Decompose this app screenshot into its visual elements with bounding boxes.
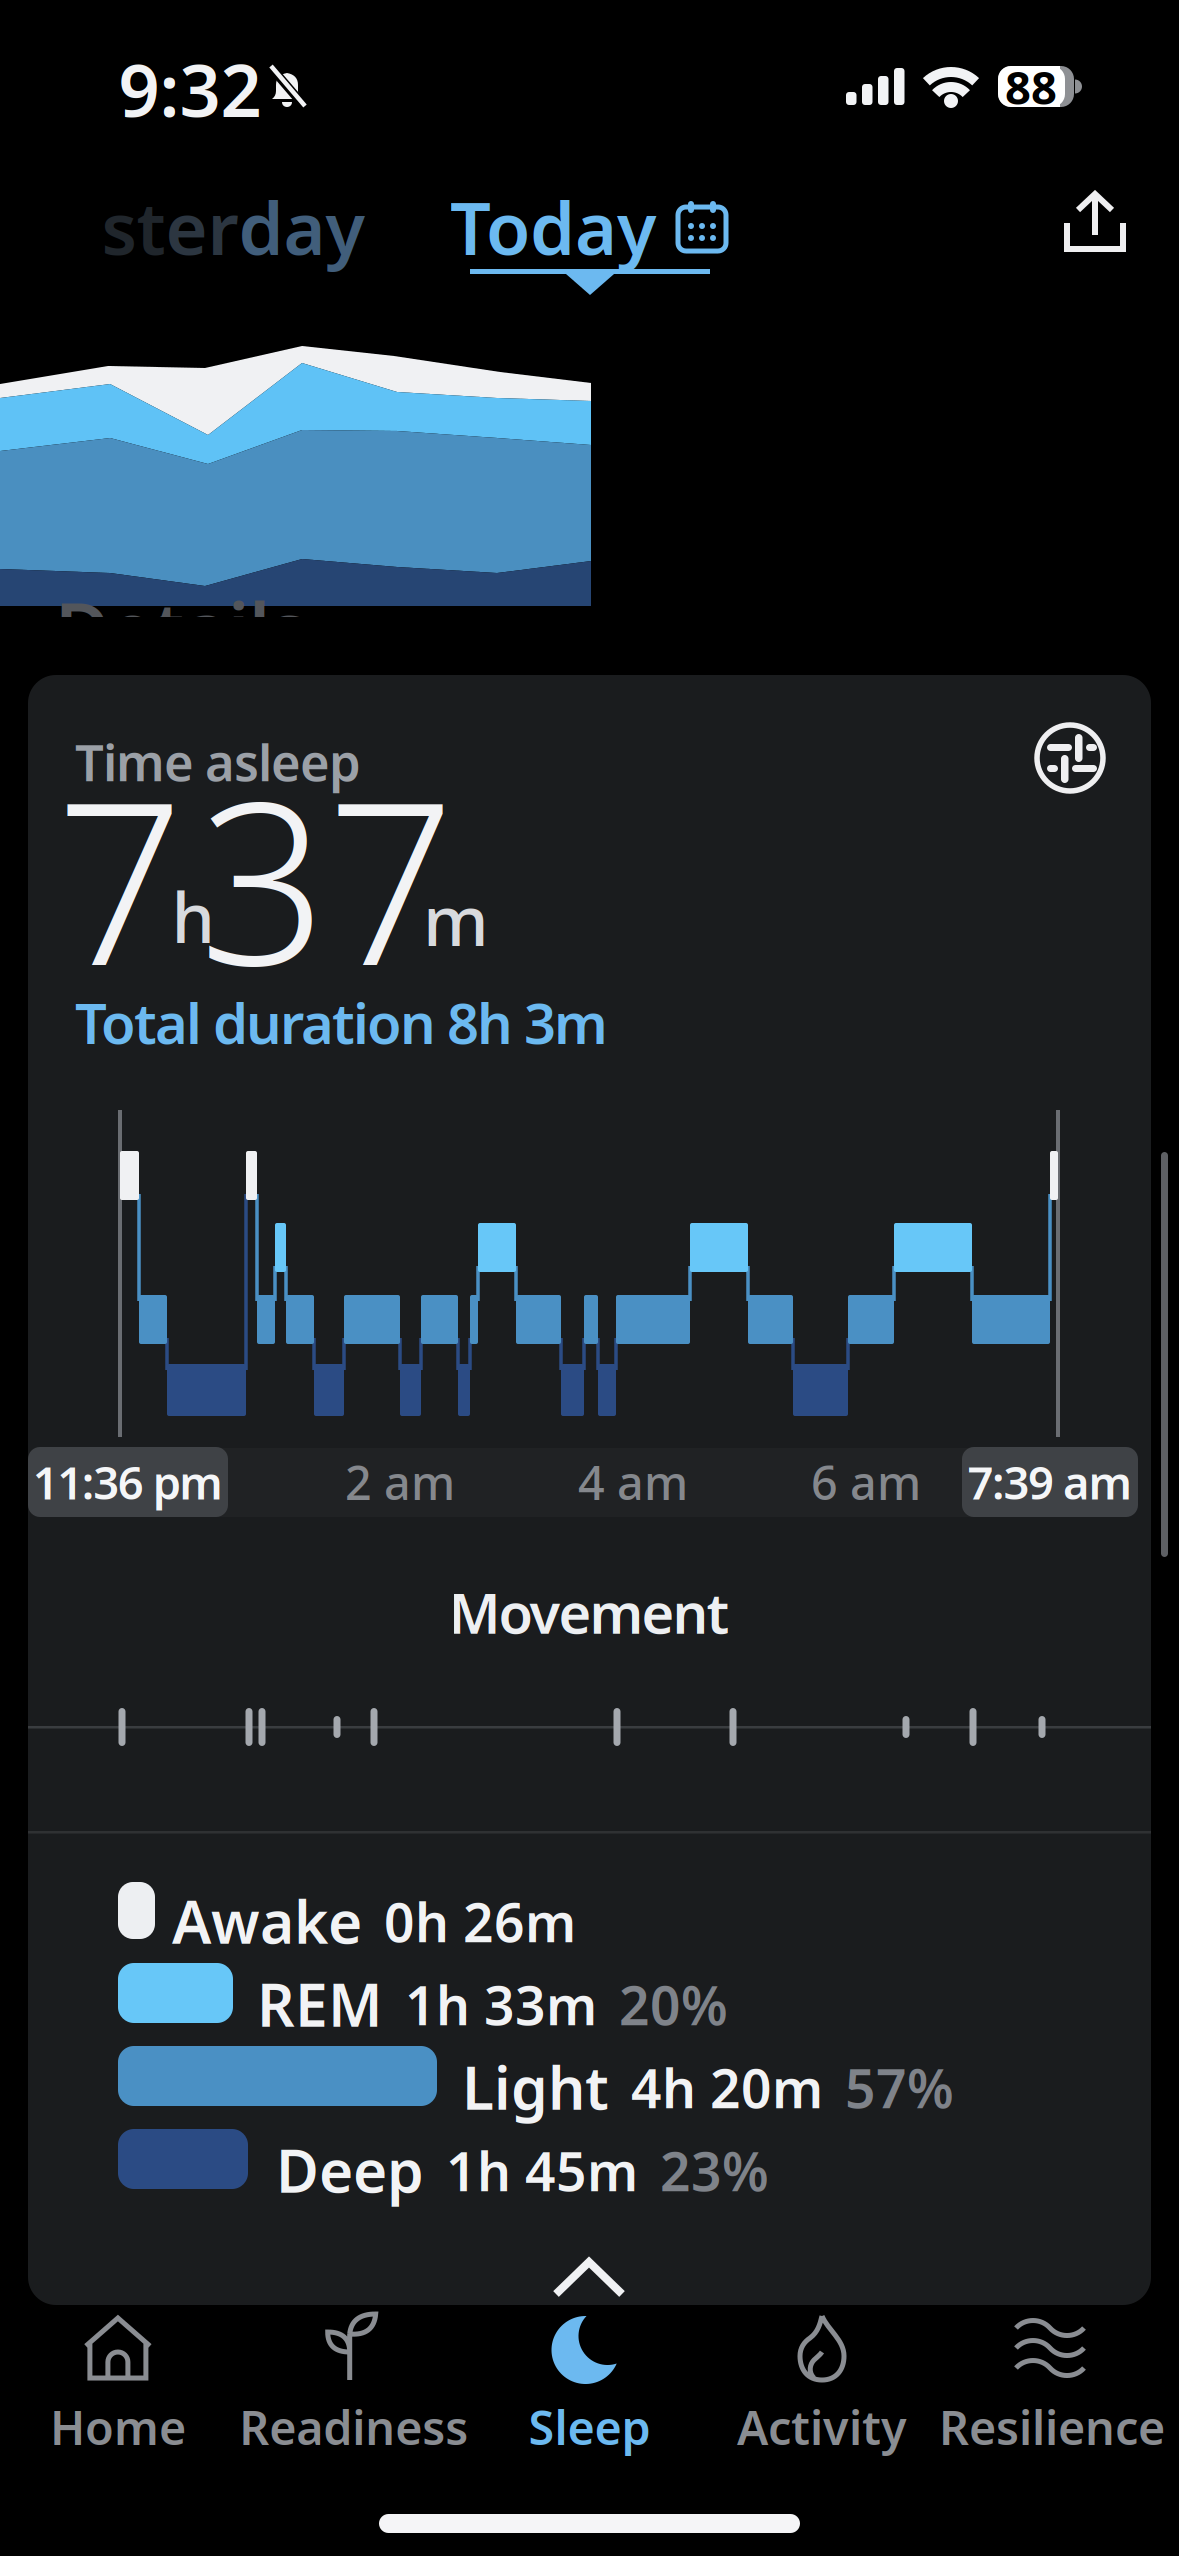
staticText: Resilience bbox=[939, 2396, 1165, 2458]
staticText: h bbox=[171, 870, 214, 962]
button[interactable]: Collapse details bbox=[552, 2258, 626, 2298]
staticText: 2 am bbox=[345, 1451, 455, 1513]
staticText: 23% bbox=[660, 2135, 769, 2206]
staticText: Deep bbox=[276, 2131, 424, 2209]
button[interactable]: Chart options bbox=[1034, 722, 1106, 794]
staticText: 4 am bbox=[578, 1451, 688, 1513]
staticText: REM bbox=[257, 1965, 383, 2043]
staticText: m bbox=[423, 873, 489, 965]
staticText: 88 bbox=[1005, 57, 1057, 117]
staticText: 6 am bbox=[811, 1451, 921, 1513]
staticText: Home bbox=[50, 2396, 186, 2458]
staticText: 7 bbox=[56, 729, 184, 1027]
staticText: day bbox=[238, 179, 364, 275]
staticText: 11:36 pm bbox=[33, 1452, 223, 1512]
staticText: Details bbox=[55, 578, 307, 677]
staticText: Time asleep bbox=[75, 728, 361, 795]
staticText: 37 bbox=[199, 729, 455, 1027]
staticText: er bbox=[165, 179, 238, 275]
staticText: Today bbox=[450, 179, 656, 275]
button[interactable]: Sleep bbox=[528, 2312, 650, 2458]
staticText: st bbox=[101, 179, 165, 275]
button[interactable]: Resilience bbox=[939, 2312, 1165, 2458]
staticText: 20% bbox=[619, 1969, 728, 2040]
button[interactable]: st bbox=[101, 179, 364, 275]
staticText: Awake bbox=[172, 1882, 362, 1960]
button[interactable]: Home bbox=[50, 2312, 186, 2458]
staticText: 9:32 bbox=[118, 41, 261, 137]
button[interactable]: Today bbox=[450, 179, 726, 275]
staticText: 1h 33m bbox=[405, 1969, 597, 2040]
staticText: 57% bbox=[845, 2052, 954, 2123]
staticText: 4h 20m bbox=[631, 2052, 823, 2123]
staticText: 1h 45m bbox=[446, 2135, 638, 2206]
button[interactable]: Readiness bbox=[239, 2312, 468, 2458]
staticText: Readiness bbox=[239, 2396, 468, 2458]
button[interactable]: Activity bbox=[737, 2312, 907, 2458]
staticText: Movement bbox=[448, 1575, 729, 1649]
staticText: Activity bbox=[737, 2396, 907, 2458]
staticText: Light bbox=[462, 2048, 609, 2126]
staticText: Sleep bbox=[528, 2396, 650, 2458]
staticText: 0h 26m bbox=[384, 1886, 576, 1957]
button[interactable]: Share bbox=[1064, 191, 1126, 253]
staticText: 7:39 am bbox=[967, 1452, 1132, 1512]
staticText: Total duration 8h 3m bbox=[75, 985, 608, 1059]
